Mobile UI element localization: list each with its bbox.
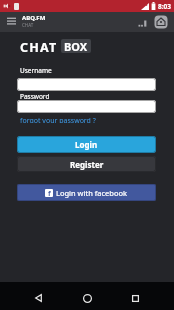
button[interactable] — [76, 285, 98, 307]
staticText: forgot your password ? — [20, 116, 96, 123]
button[interactable] — [7, 17, 16, 25]
button[interactable]: f — [17, 184, 156, 201]
button[interactable]: forgot your password ? — [20, 116, 96, 123]
staticText: Login with facebook — [56, 188, 128, 198]
button[interactable] — [27, 285, 49, 307]
button[interactable] — [124, 285, 146, 307]
staticText: CHAT — [20, 39, 58, 53]
staticText: Register — [70, 159, 104, 170]
button[interactable] — [17, 78, 156, 91]
staticText: CHAT — [22, 22, 34, 28]
staticText: f — [48, 189, 51, 197]
staticText: ABQ.FM — [22, 14, 46, 22]
staticText: Password — [20, 92, 50, 99]
button[interactable] — [138, 18, 148, 27]
button[interactable] — [154, 15, 168, 29]
staticText: BOX — [64, 39, 88, 53]
staticText: Login — [75, 139, 98, 150]
staticText: Username — [20, 66, 52, 73]
button[interactable] — [17, 100, 156, 113]
button[interactable]: Login — [17, 136, 156, 153]
button[interactable]: Register — [17, 156, 156, 172]
staticText: 8:03 — [158, 2, 171, 11]
